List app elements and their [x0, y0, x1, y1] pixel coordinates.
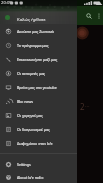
- button[interactable]: Bbc news: [0, 94, 77, 108]
- staticText: •••: [85, 104, 90, 109]
- button[interactable]: Settings: [0, 157, 77, 171]
- staticText: Το πρόγραμμα μας: [17, 43, 49, 48]
- staticText: Οι διαγωνισμοί μας: [17, 127, 50, 132]
- staticText: Οι χορηγοί μας: [17, 113, 43, 118]
- button[interactable]: Οι χορηγοί μας: [0, 108, 77, 122]
- button[interactable]: Διαφημίσου στον b/e: [0, 136, 77, 150]
- staticText: Settings: [17, 162, 31, 167]
- staticText: Ακούστε μας Ζωντανά: [17, 29, 54, 34]
- button[interactable]: Search: [84, 11, 94, 21]
- button[interactable]: Καλώς ήρθατε: [0, 0, 77, 24]
- staticText: Διαφημίσου στον b/e: [17, 141, 53, 146]
- staticText: Βρείτε μας στο youtube: [17, 85, 57, 90]
- button[interactable]: More options: [94, 11, 103, 20]
- button[interactable]: Ακούστε μας Ζωντανά: [0, 24, 77, 38]
- staticText: Καλώς ήρθατε: [17, 16, 46, 22]
- button[interactable]: Το πρόγραμμα μας: [0, 38, 77, 52]
- button[interactable]: Οι εκπομπές μας: [0, 66, 77, 80]
- button[interactable]: Βρείτε μας στο youtube: [0, 80, 77, 94]
- staticText: Επικοινωνήστε μαζί μας: [17, 57, 58, 62]
- staticText: Bbc news: [17, 99, 33, 104]
- staticText: 20:09: [1, 0, 12, 6]
- staticText: 2: [80, 101, 85, 112]
- staticText: Οι εκπομπές μας: [17, 71, 46, 76]
- button[interactable]: Οι διαγωνισμοί μας: [0, 122, 77, 136]
- button[interactable]: About b/e radio: [0, 171, 77, 183]
- button[interactable]: Επικοινωνήστε μαζί μας: [0, 52, 77, 66]
- staticText: About b/e radio: [17, 175, 44, 180]
